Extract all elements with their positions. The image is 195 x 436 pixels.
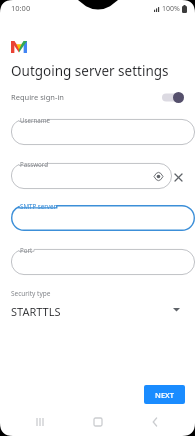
button[interactable]: SMTP server: [11, 205, 195, 231]
staticText: Username: [20, 116, 51, 124]
button[interactable]: Username: [11, 119, 195, 145]
staticText: 10:00: [11, 3, 31, 13]
staticText: Password: [20, 160, 48, 168]
staticText: Require sign-in: [11, 92, 64, 102]
staticText: 100%: [162, 4, 180, 14]
button[interactable]: Clear password: [168, 167, 188, 187]
button[interactable]: Recents: [23, 408, 57, 436]
button[interactable]: Back: [138, 408, 172, 436]
staticText: SMTP server: [20, 202, 56, 210]
button[interactable]: NEXT: [144, 385, 185, 404]
staticText: Security type: [11, 289, 51, 298]
staticText: Port: [20, 246, 33, 254]
staticText: NEXT: [155, 390, 174, 400]
button[interactable]: Home: [81, 408, 115, 436]
staticText: Outgoing server settings: [11, 62, 169, 80]
button[interactable]: Show password: [151, 169, 165, 183]
staticText: STARTTLS: [11, 304, 61, 319]
button[interactable]: Require sign-in: [0, 86, 195, 108]
button[interactable]: Security type: [0, 289, 195, 319]
button[interactable]: Port: [11, 249, 195, 275]
other: Gmail: [11, 41, 27, 53]
button[interactable]: Password: [11, 163, 172, 189]
